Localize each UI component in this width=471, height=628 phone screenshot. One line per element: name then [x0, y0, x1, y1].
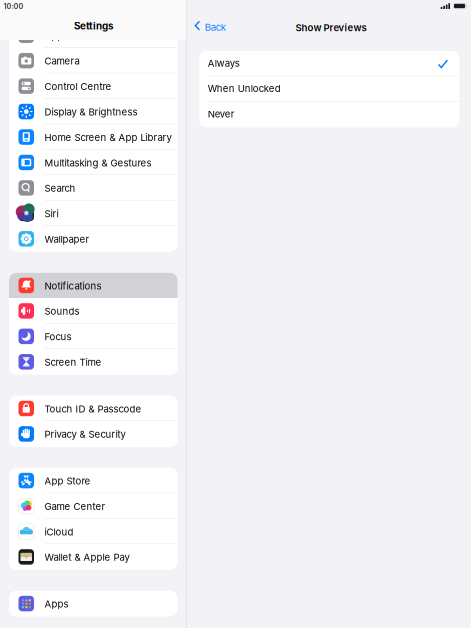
button[interactable]: Camera: [9, 48, 177, 73]
staticText: 10:00: [4, 2, 24, 11]
button[interactable]: iCloud: [9, 519, 177, 544]
button[interactable]: Game Center: [9, 493, 177, 519]
staticText: Always: [208, 57, 240, 69]
staticText: Show Previews: [296, 22, 367, 34]
staticText: Never: [208, 108, 235, 120]
staticText: Back: [205, 21, 226, 33]
button[interactable]: Privacy & Security: [9, 421, 177, 447]
button[interactable]: Notifications: [9, 273, 177, 298]
button[interactable]: Apps: [9, 591, 177, 616]
button[interactable]: Siri: [9, 201, 177, 226]
button[interactable]: Back: [187, 18, 233, 36]
staticText: When Unlocked: [208, 83, 281, 94]
staticText: Apps: [44, 30, 68, 41]
button[interactable]: Touch ID & Passcode: [9, 396, 177, 421]
staticText: Siri: [44, 208, 58, 220]
button[interactable]: Sounds: [9, 298, 177, 324]
staticText: Privacy & Security: [44, 428, 125, 440]
staticText: Touch ID & Passcode: [44, 403, 141, 415]
staticText: Search: [44, 182, 75, 194]
button[interactable]: Control Centre: [9, 73, 177, 99]
staticText: Settings: [74, 20, 114, 32]
staticText: Camera: [44, 55, 79, 67]
button[interactable]: Search: [9, 175, 177, 201]
button[interactable]: Always: [199, 51, 459, 76]
staticText: Control Centre: [44, 81, 111, 92]
button[interactable]: App Store: [9, 468, 177, 493]
staticText: Focus: [44, 331, 71, 343]
staticText: Screen Time: [44, 356, 101, 368]
staticText: Home Screen & App Library: [44, 132, 171, 143]
button[interactable]: Wallet & Apple Pay: [9, 544, 177, 570]
button[interactable]: When Unlocked: [199, 76, 459, 102]
staticText: Sounds: [44, 305, 79, 317]
staticText: Game Center: [44, 501, 105, 512]
button[interactable]: Wallpaper: [9, 226, 177, 251]
button[interactable]: Display & Brightness: [9, 99, 177, 124]
staticText: Wallpaper: [44, 233, 89, 245]
staticText: App Store: [44, 475, 90, 487]
staticText: Wallet & Apple Pay: [44, 551, 129, 563]
button[interactable]: Apps: [9, 22, 177, 48]
staticText: Apps: [44, 598, 68, 610]
staticText: Notifications: [44, 280, 101, 292]
button[interactable]: Home Screen & App Library: [9, 124, 177, 150]
staticText: iCloud: [44, 526, 73, 538]
button[interactable]: Focus: [9, 324, 177, 349]
staticText: Display & Brightness: [44, 106, 137, 118]
button[interactable]: Screen Time: [9, 349, 177, 374]
button[interactable]: Multitasking & Gestures: [9, 150, 177, 175]
staticText: Multitasking & Gestures: [44, 157, 151, 169]
button[interactable]: Never: [199, 102, 459, 127]
